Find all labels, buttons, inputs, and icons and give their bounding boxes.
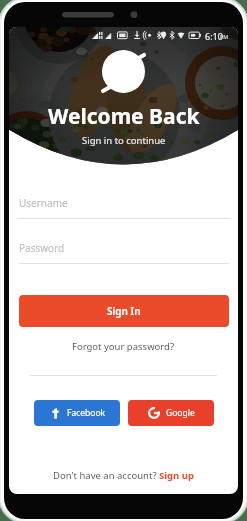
staticText: Forgot your password? <box>72 340 175 353</box>
staticText: Facebook <box>67 407 106 419</box>
staticText: Don't have an account? <box>53 469 159 482</box>
button[interactable]: Facebook <box>34 400 120 426</box>
staticText: Sign In <box>107 304 141 318</box>
staticText: Sign up <box>159 469 194 482</box>
staticText: Google <box>166 407 195 419</box>
staticText: Password <box>19 241 65 255</box>
staticText: Username <box>19 196 68 210</box>
button[interactable]: Don't have an account? <box>53 469 194 482</box>
staticText: 6:10 <box>205 30 223 42</box>
staticText: Welcome Back <box>48 102 200 131</box>
button[interactable]: Password <box>19 241 229 264</box>
staticText: Sign in to continue <box>82 134 166 147</box>
button[interactable]: Sign In <box>19 295 229 327</box>
button[interactable]: Forgot your password? <box>72 340 175 353</box>
staticText: PM <box>220 33 229 40</box>
button[interactable]: Google <box>128 400 214 426</box>
button[interactable]: Username <box>19 196 229 219</box>
